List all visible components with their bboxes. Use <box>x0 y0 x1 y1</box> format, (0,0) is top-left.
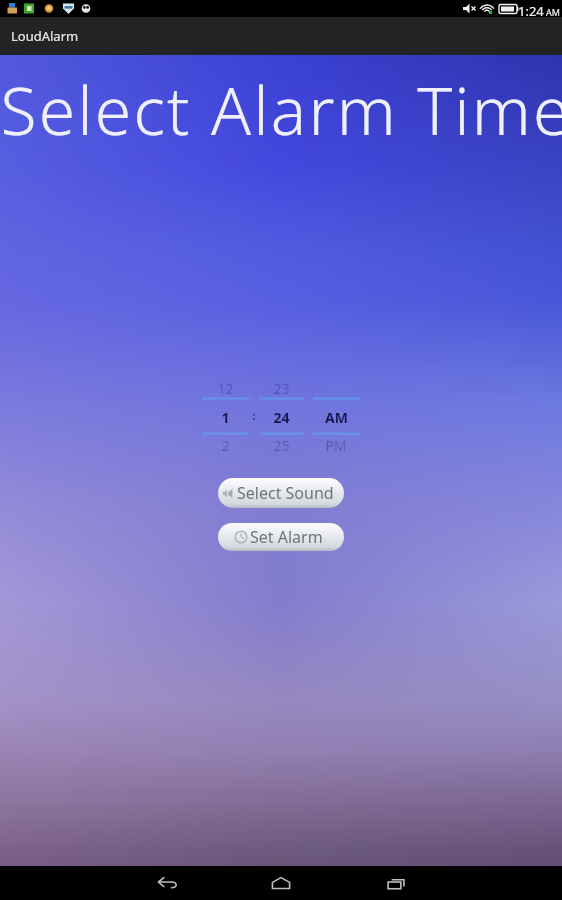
staticText: 2 <box>221 436 230 455</box>
staticText: Select Alarm Time <box>0 64 562 154</box>
other: Clock <box>234 530 248 544</box>
staticText: 12 <box>217 379 234 398</box>
staticText: AM <box>325 408 348 427</box>
staticText: 23 <box>273 379 290 398</box>
button[interactable]: Back <box>132 866 204 900</box>
button[interactable]: Sound <box>218 478 344 508</box>
button[interactable]: Recents <box>360 866 432 900</box>
staticText: : <box>252 408 256 423</box>
staticText: PM <box>325 436 347 455</box>
button[interactable] <box>199 378 251 452</box>
button[interactable]: Home <box>245 866 317 900</box>
staticText: 25 <box>273 436 290 455</box>
staticText: 24 <box>273 408 290 427</box>
button[interactable] <box>310 378 362 452</box>
staticText: 1 <box>221 408 230 427</box>
other: Sound <box>222 488 235 499</box>
button[interactable]: Clock <box>218 523 344 551</box>
staticText: Select Sound <box>237 482 334 504</box>
staticText: LoudAlarm <box>11 27 79 45</box>
staticText: Set Alarm <box>250 526 323 548</box>
button[interactable] <box>255 378 307 452</box>
staticText: AM <box>546 6 560 18</box>
staticText: 1:24 <box>518 2 544 19</box>
